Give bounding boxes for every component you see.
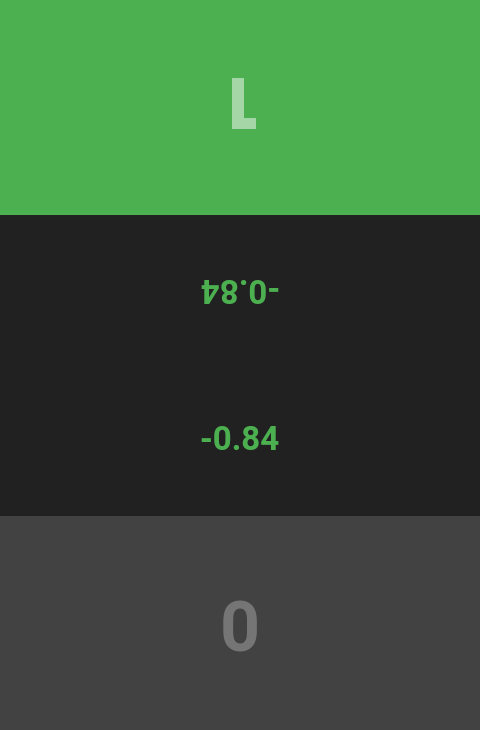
button[interactable]: Landscape orientation — [0, 0, 480, 215]
button[interactable]: -0.84 — [0, 215, 480, 365]
staticText: -0.84 — [200, 272, 280, 311]
button[interactable]: 0 — [0, 516, 480, 730]
staticText: 0 — [220, 586, 261, 668]
staticText: -0.84 — [200, 419, 280, 458]
button[interactable]: -0.84 — [0, 365, 480, 516]
